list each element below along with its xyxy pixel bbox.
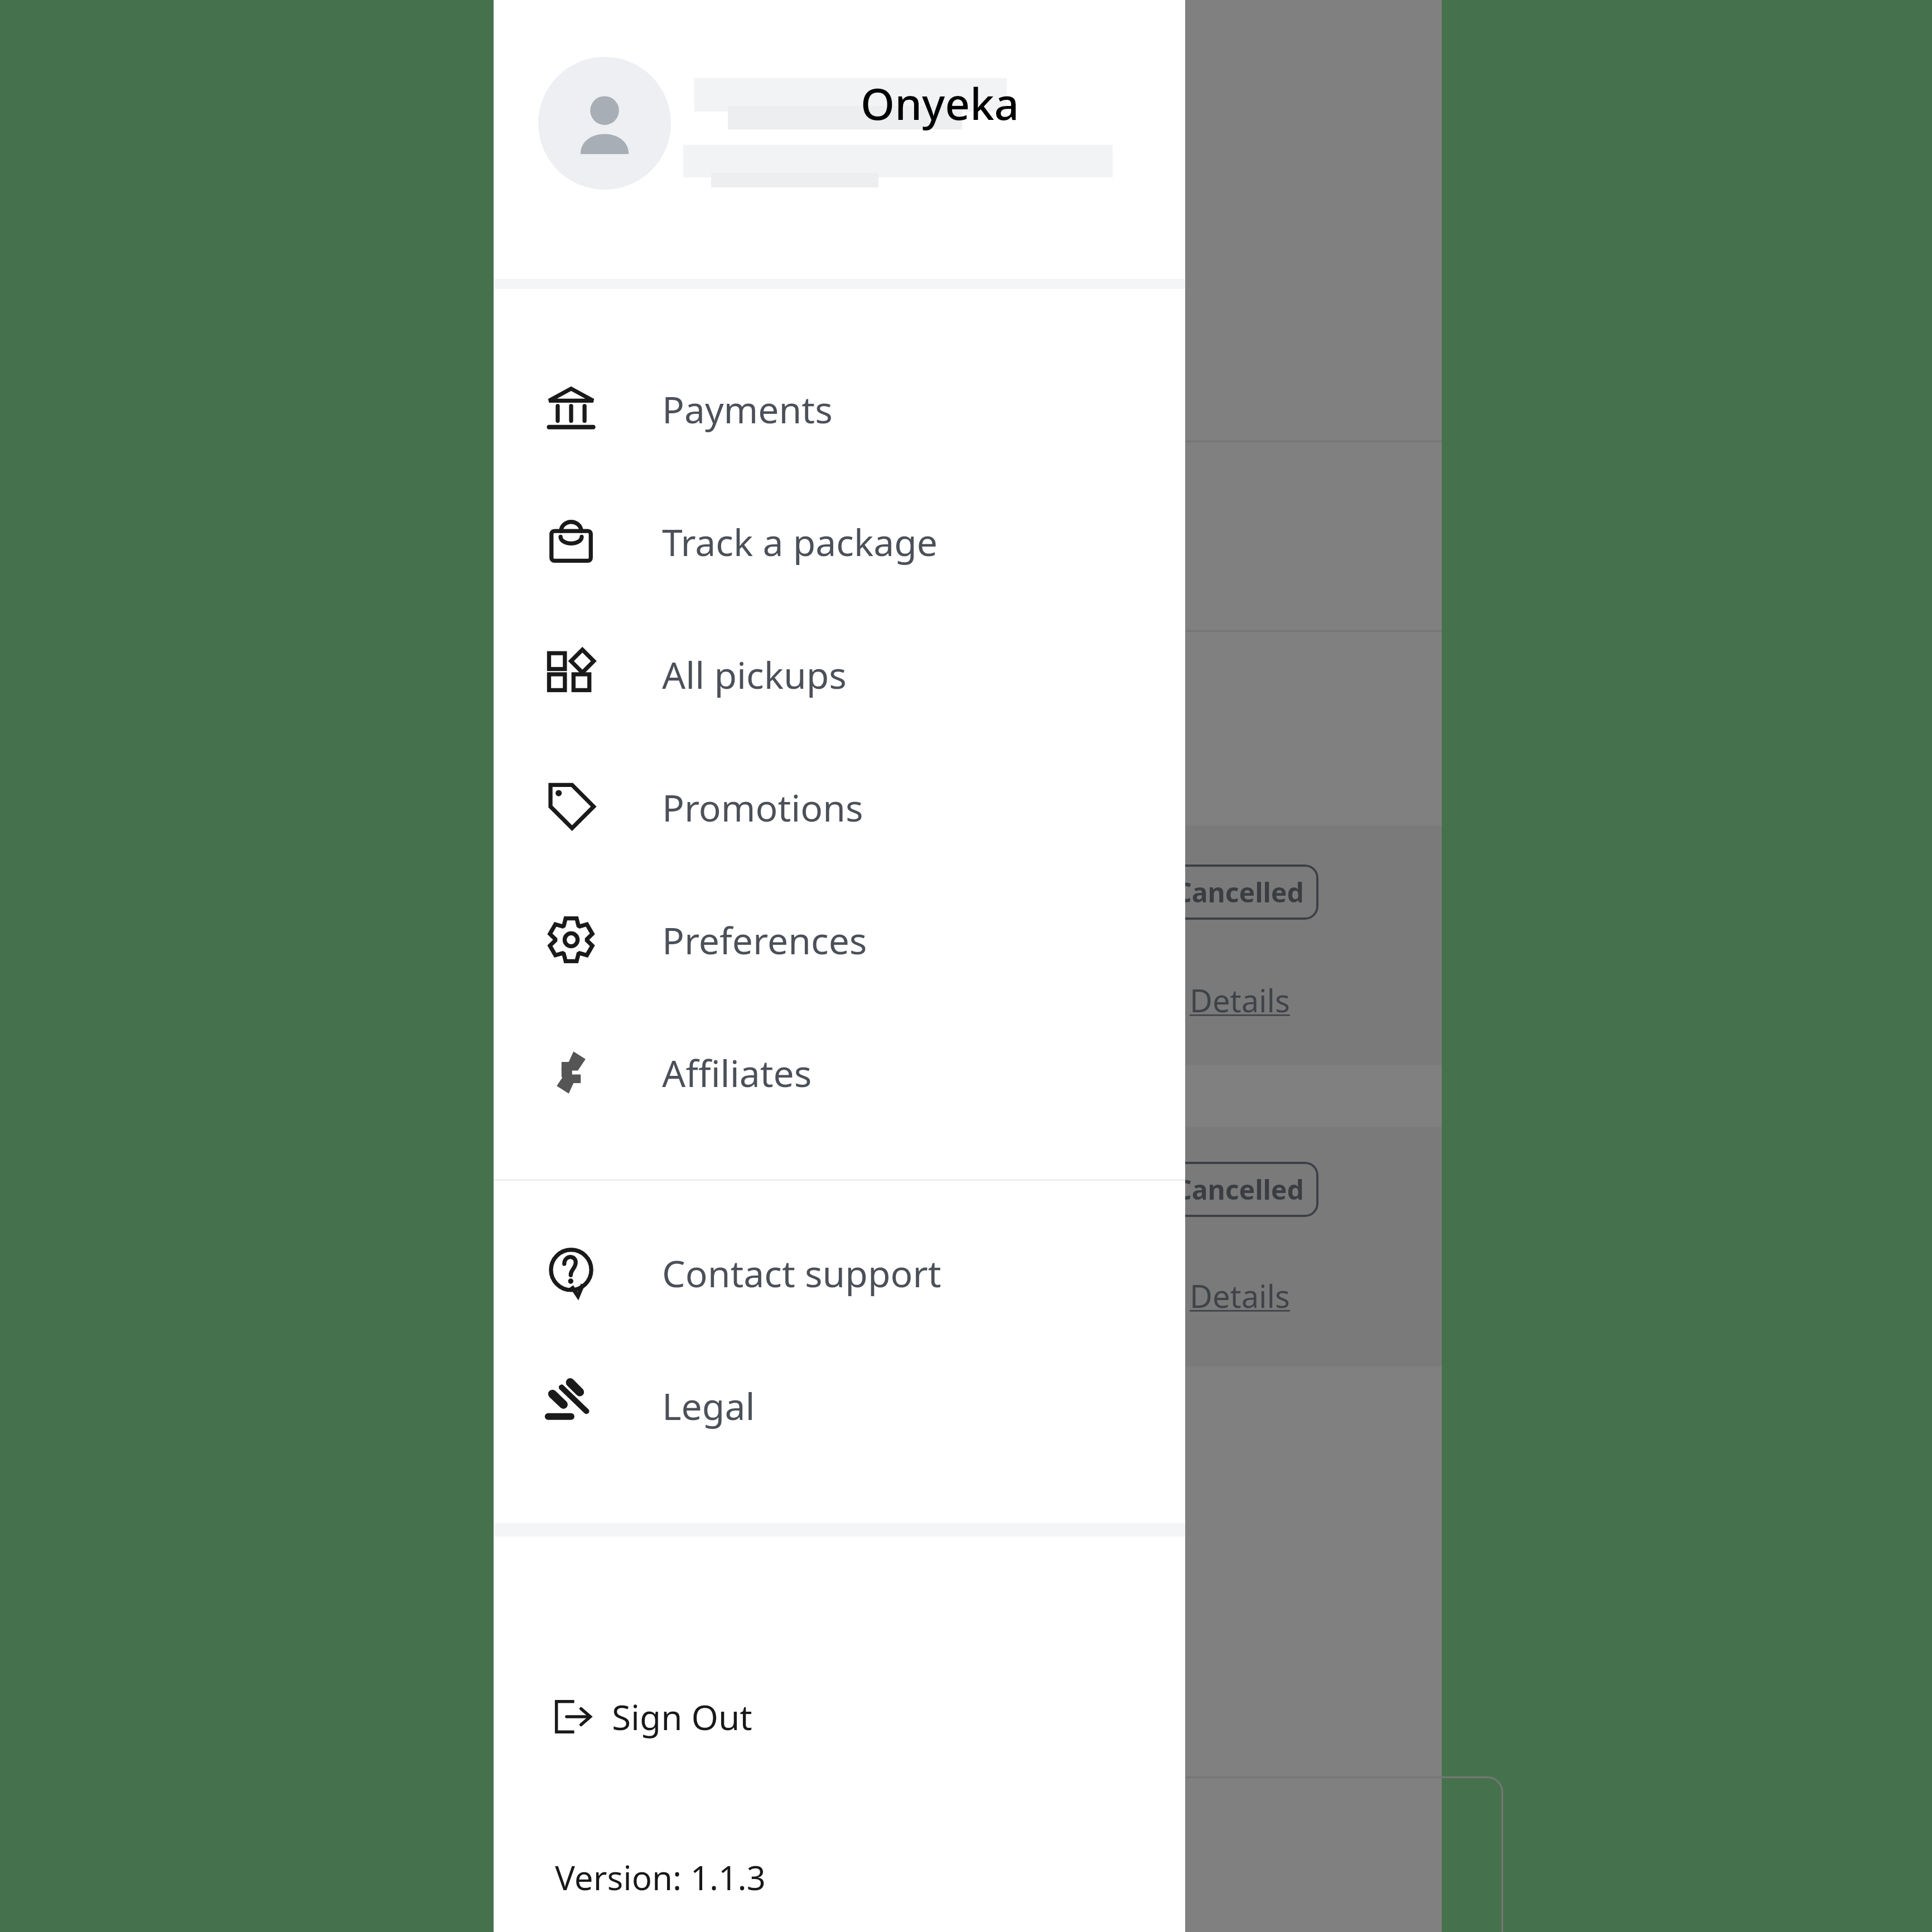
staticText: Cancelled — [1175, 1171, 1304, 1207]
button[interactable]: Preferences — [494, 873, 1185, 1006]
staticText: All pickups — [662, 649, 847, 699]
other: Legal — [547, 1382, 595, 1429]
other: Contact support — [547, 1249, 595, 1297]
button[interactable]: Affiliates — [494, 1006, 1185, 1139]
button[interactable]: Payments — [494, 342, 1185, 475]
other: Affiliates — [547, 1049, 595, 1097]
staticText: Preferences — [662, 915, 867, 965]
other: Promotions — [547, 783, 595, 831]
staticText: Details — [1190, 979, 1290, 1021]
other: Sign Out — [550, 1696, 593, 1738]
button[interactable]: Cancelled — [1160, 1162, 1318, 1217]
staticText: Sign Out — [612, 1693, 752, 1740]
button[interactable]: Onyeka — [494, 0, 1185, 279]
other: Preferences — [547, 916, 595, 964]
staticText: Contact support — [662, 1248, 941, 1298]
staticText: Legal — [662, 1380, 755, 1431]
button[interactable]: Sign Out — [494, 1675, 1185, 1759]
button[interactable]: Legal — [494, 1339, 1185, 1472]
staticText: Cancelled — [1175, 874, 1304, 910]
staticText: Payments — [662, 384, 833, 434]
button[interactable]: Promotions — [494, 741, 1185, 873]
staticText: Version: 1.1.3 — [555, 1854, 766, 1900]
button[interactable]: Details — [1190, 979, 1290, 1021]
button[interactable]: Track a package — [494, 475, 1185, 608]
other: Payments — [547, 385, 595, 433]
button[interactable]: Details — [1190, 1274, 1290, 1317]
staticText: Details — [1190, 1274, 1290, 1317]
button[interactable]: Contact support — [494, 1206, 1185, 1339]
staticText: Affiliates — [662, 1047, 812, 1098]
staticText: Track a package — [662, 516, 938, 567]
button[interactable]: All pickups — [494, 608, 1185, 741]
button[interactable]: Cancelled — [1160, 864, 1318, 920]
other: Track a package — [547, 518, 595, 566]
staticText: Promotions — [662, 782, 863, 832]
other: All pickups — [547, 650, 595, 698]
staticText: Onyeka — [861, 74, 1020, 133]
